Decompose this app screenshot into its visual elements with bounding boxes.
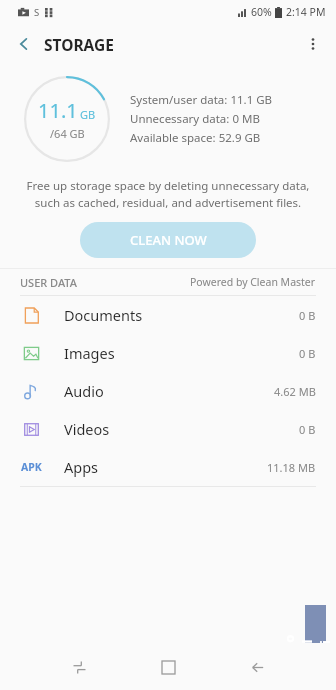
staticText: GB bbox=[80, 107, 96, 122]
button[interactable]: Images bbox=[0, 334, 336, 372]
staticText: System/user data: 11.1 GB bbox=[130, 92, 273, 108]
staticText: STORAGE bbox=[44, 34, 114, 55]
staticText: /64 GB bbox=[50, 126, 85, 141]
staticText: Available space: 52.9 GB bbox=[130, 130, 261, 146]
staticText: Powered by Clean Master bbox=[190, 275, 316, 289]
staticText: Images bbox=[64, 343, 115, 363]
staticText: CLEAN NOW bbox=[130, 231, 207, 249]
button[interactable]: Back bbox=[8, 28, 40, 60]
button[interactable]: Home bbox=[151, 650, 185, 684]
staticText: 11.1 bbox=[38, 97, 78, 124]
button[interactable]: Audio bbox=[0, 372, 336, 410]
button[interactable]: Recents bbox=[62, 650, 96, 684]
button[interactable]: Videos bbox=[0, 410, 336, 448]
staticText: Free up storage space by deleting unnece… bbox=[26, 178, 310, 210]
staticText: mobile.ir bbox=[279, 634, 336, 655]
staticText: Unnecessary data: 0 MB bbox=[130, 111, 260, 127]
staticText: Videos bbox=[64, 419, 110, 439]
button[interactable]: More options bbox=[296, 27, 330, 61]
staticText: Documents bbox=[64, 305, 143, 325]
staticText: S bbox=[34, 6, 40, 19]
staticText: USER DATA bbox=[20, 275, 77, 290]
staticText: 0 B bbox=[299, 422, 316, 437]
button[interactable]: CLEAN NOW bbox=[80, 222, 256, 258]
button[interactable]: APK bbox=[0, 448, 336, 486]
button[interactable]: Back bbox=[240, 650, 274, 684]
staticText: 4.62 MB bbox=[274, 384, 316, 399]
staticText: 0 B bbox=[299, 346, 316, 361]
staticText: 2:14 PM bbox=[286, 5, 326, 19]
staticText: APK bbox=[21, 460, 42, 474]
button[interactable]: Documents bbox=[0, 296, 336, 334]
staticText: 0 B bbox=[299, 308, 316, 323]
staticText: Apps bbox=[64, 457, 99, 477]
staticText: 60% bbox=[251, 5, 272, 19]
staticText: Audio bbox=[64, 381, 104, 401]
staticText: 11.18 MB bbox=[267, 460, 316, 475]
